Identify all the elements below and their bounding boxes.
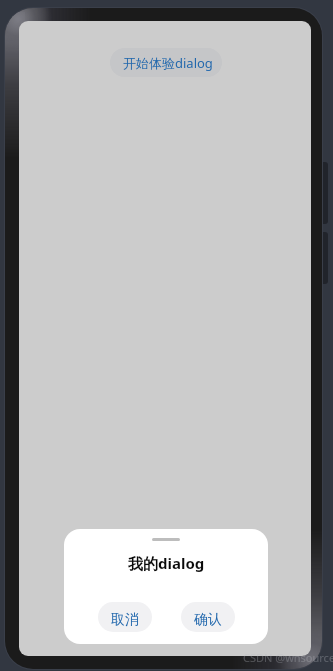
staticText: 确认 <box>194 611 222 629</box>
staticText: 开始体验dialog <box>123 54 213 72</box>
staticText: CSDN @wnsource <box>243 650 333 665</box>
button[interactable]: 取消 <box>98 602 152 632</box>
staticText: 我的dialog <box>128 553 205 573</box>
staticText: 取消 <box>111 611 139 629</box>
button[interactable]: 开始体验dialog <box>110 48 222 77</box>
button[interactable]: 确认 <box>181 602 235 632</box>
